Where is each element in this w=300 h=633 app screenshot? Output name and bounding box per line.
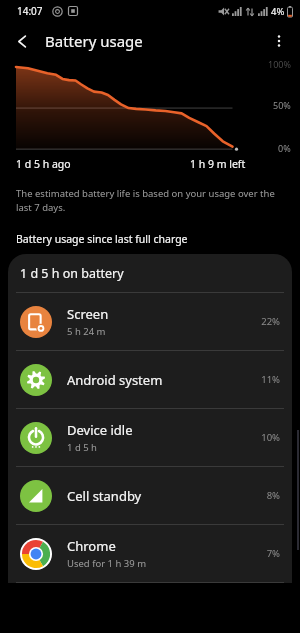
staticText: Cell standby — [67, 487, 142, 505]
button[interactable]: Android system — [8, 351, 292, 408]
staticText: Device idle — [67, 421, 133, 439]
button[interactable]: Screen — [8, 293, 292, 350]
staticText: 8% — [266, 489, 280, 502]
staticText: Used for 1 h 39 m — [67, 557, 147, 570]
button[interactable]: Cell standby — [8, 467, 292, 524]
staticText: 7% — [266, 547, 280, 560]
staticText: 1 d 5 h on battery — [20, 265, 124, 282]
staticText: 1 h 9 m left — [190, 157, 246, 171]
staticText: 1 d 5 h — [67, 441, 97, 454]
staticText: Battery usage since last full charge — [16, 232, 188, 246]
button[interactable]: Device idle — [8, 409, 292, 466]
button[interactable]: Back — [8, 27, 36, 55]
button[interactable]: Chrome — [8, 525, 292, 582]
button[interactable]: More options — [264, 26, 294, 56]
staticText: 0% — [278, 142, 291, 154]
staticText: 10% — [261, 431, 280, 444]
staticText: Screen — [67, 305, 109, 323]
staticText: 1 d 5 h ago — [16, 157, 71, 171]
staticText: 100% — [268, 58, 291, 70]
staticText: 4% — [271, 5, 285, 18]
staticText: 22% — [261, 315, 280, 328]
staticText: Chrome — [67, 537, 116, 555]
staticText: 5 h 24 m — [67, 325, 106, 338]
staticText: Battery usage — [45, 31, 143, 51]
staticText: The estimated battery life is based on y… — [16, 187, 275, 214]
staticText: 50% — [273, 99, 291, 111]
staticText: Android system — [67, 371, 163, 389]
staticText: 14:07 — [17, 4, 43, 18]
staticText: 11% — [261, 373, 280, 386]
